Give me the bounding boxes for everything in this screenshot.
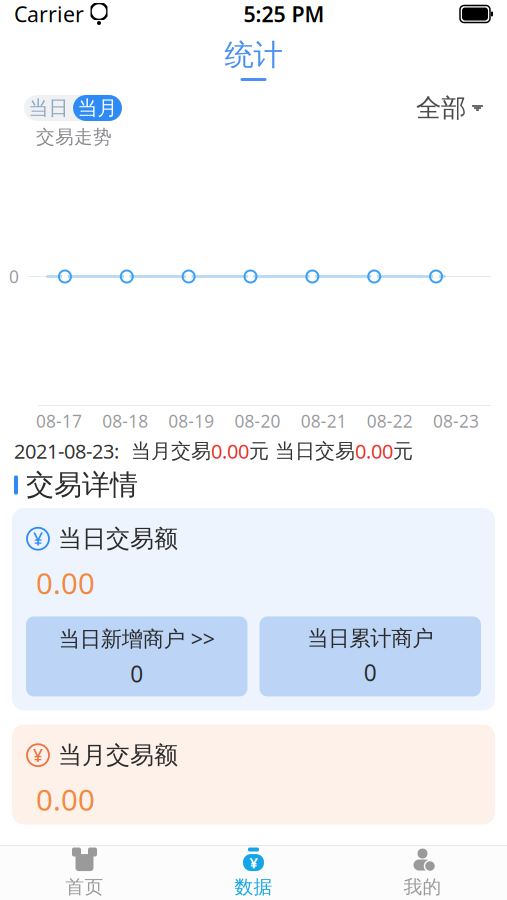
staticText: ¥: [33, 527, 43, 550]
staticText: 0.00: [36, 780, 95, 819]
staticText: Carrier: [14, 0, 84, 28]
staticText: 0.00: [355, 438, 393, 464]
staticText: 当日新增商户 >>: [59, 624, 215, 652]
staticText: ¥: [33, 744, 43, 767]
staticText: 08-17: [36, 409, 82, 432]
staticText: 当日: [28, 96, 68, 120]
button[interactable]: 当日: [24, 95, 73, 121]
button[interactable]: 当日累计商户: [259, 616, 481, 696]
staticText: 08-22: [367, 409, 413, 432]
staticText: 08-20: [234, 409, 280, 432]
button[interactable]: 全部: [416, 92, 483, 123]
staticText: 08-23: [433, 409, 479, 432]
staticText: 当月交易额: [58, 740, 178, 770]
staticText: 元 当日交易: [249, 439, 355, 463]
staticText: 0.00: [211, 438, 249, 464]
staticText: 元: [393, 439, 413, 463]
staticText: 当月交易: [119, 439, 211, 463]
staticText: 当日累计商户: [307, 625, 433, 651]
button[interactable]: 首页: [0, 846, 169, 900]
staticText: 08-18: [102, 409, 148, 432]
staticText: 我的: [403, 875, 441, 898]
button[interactable]: 我的: [338, 846, 507, 900]
staticText: 数据: [234, 875, 272, 898]
staticText: 当日交易额: [58, 524, 178, 553]
staticText: 交易走势: [36, 125, 112, 148]
staticText: 0.00: [36, 563, 95, 602]
staticText: 交易详情: [26, 468, 138, 502]
button[interactable]: ¥: [169, 846, 338, 900]
staticText: 08-21: [301, 409, 347, 432]
button[interactable]: 当日新增商户 >>: [26, 616, 247, 696]
staticText: 当月: [77, 96, 117, 120]
staticText: ¥: [249, 853, 257, 872]
staticText: 统计: [224, 37, 282, 73]
staticText: 0: [364, 657, 377, 688]
staticText: 全部: [416, 92, 466, 123]
staticText: 首页: [65, 875, 103, 898]
staticText: 0: [130, 658, 143, 689]
staticText: 2021-08-23:: [14, 438, 119, 464]
staticText: 0: [9, 265, 19, 288]
button[interactable]: 当月: [73, 95, 122, 121]
staticText: 08-19: [168, 409, 214, 432]
staticText: 5:25 PM: [243, 0, 324, 28]
